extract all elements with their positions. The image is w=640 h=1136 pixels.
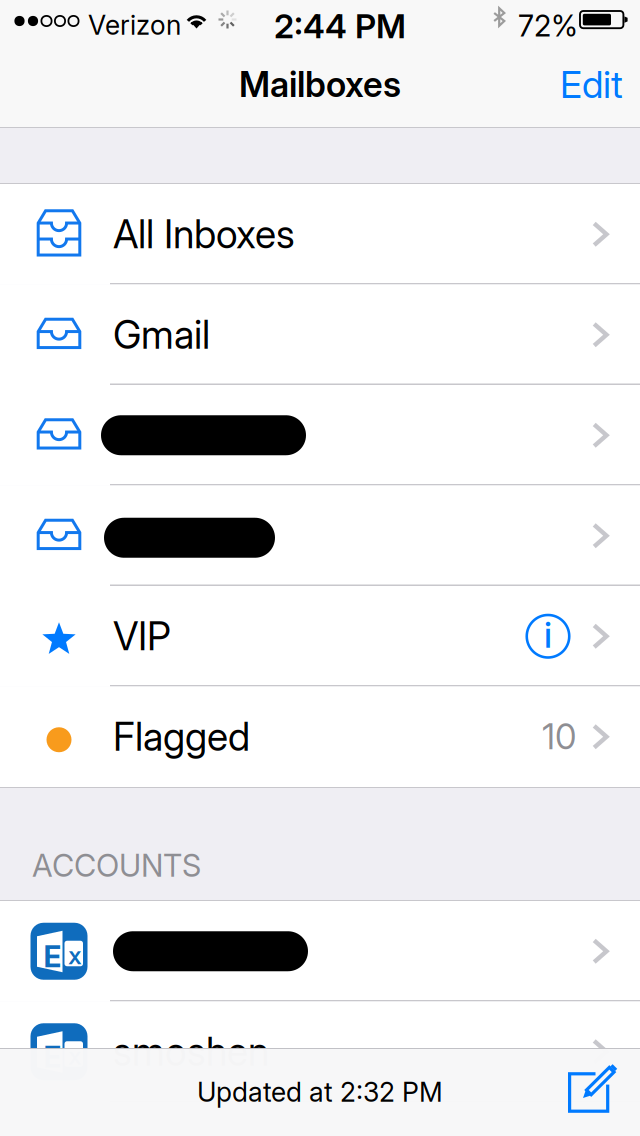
staticText: All Inboxes: [113, 211, 295, 258]
button[interactable]: All Inboxes: [0, 184, 640, 284]
button[interactable]: [0, 385, 640, 485]
staticText: 10: [542, 716, 576, 758]
staticText: X: [68, 1047, 82, 1069]
staticText: Flagged: [113, 713, 250, 760]
staticText: smoshen: [113, 1028, 269, 1075]
staticText: VIP: [113, 613, 171, 660]
button[interactable]: [0, 485, 640, 586]
staticText: X: [68, 946, 82, 969]
button[interactable]: E: [0, 901, 640, 1001]
staticText: E: [43, 1039, 61, 1075]
button[interactable]: VIP: [0, 586, 640, 686]
staticText: E: [43, 939, 61, 974]
staticText: Edit: [560, 62, 623, 107]
button[interactable]: Gmail: [0, 284, 640, 385]
button[interactable]: Edit: [530, 44, 640, 125]
staticText: Gmail: [113, 311, 210, 358]
staticText: 2:44 PM: [274, 6, 406, 46]
staticText: ACCOUNTS: [32, 847, 201, 884]
staticText: Updated at 2:32 PM: [197, 1076, 443, 1108]
staticText: Verizon: [88, 9, 181, 41]
staticText: i: [544, 614, 552, 656]
button[interactable]: Flagged: [0, 686, 640, 787]
button[interactable]: Compose: [562, 1066, 614, 1118]
staticText: Mailboxes: [239, 63, 401, 105]
staticText: 72%: [518, 8, 578, 43]
button[interactable]: E: [0, 1001, 640, 1102]
